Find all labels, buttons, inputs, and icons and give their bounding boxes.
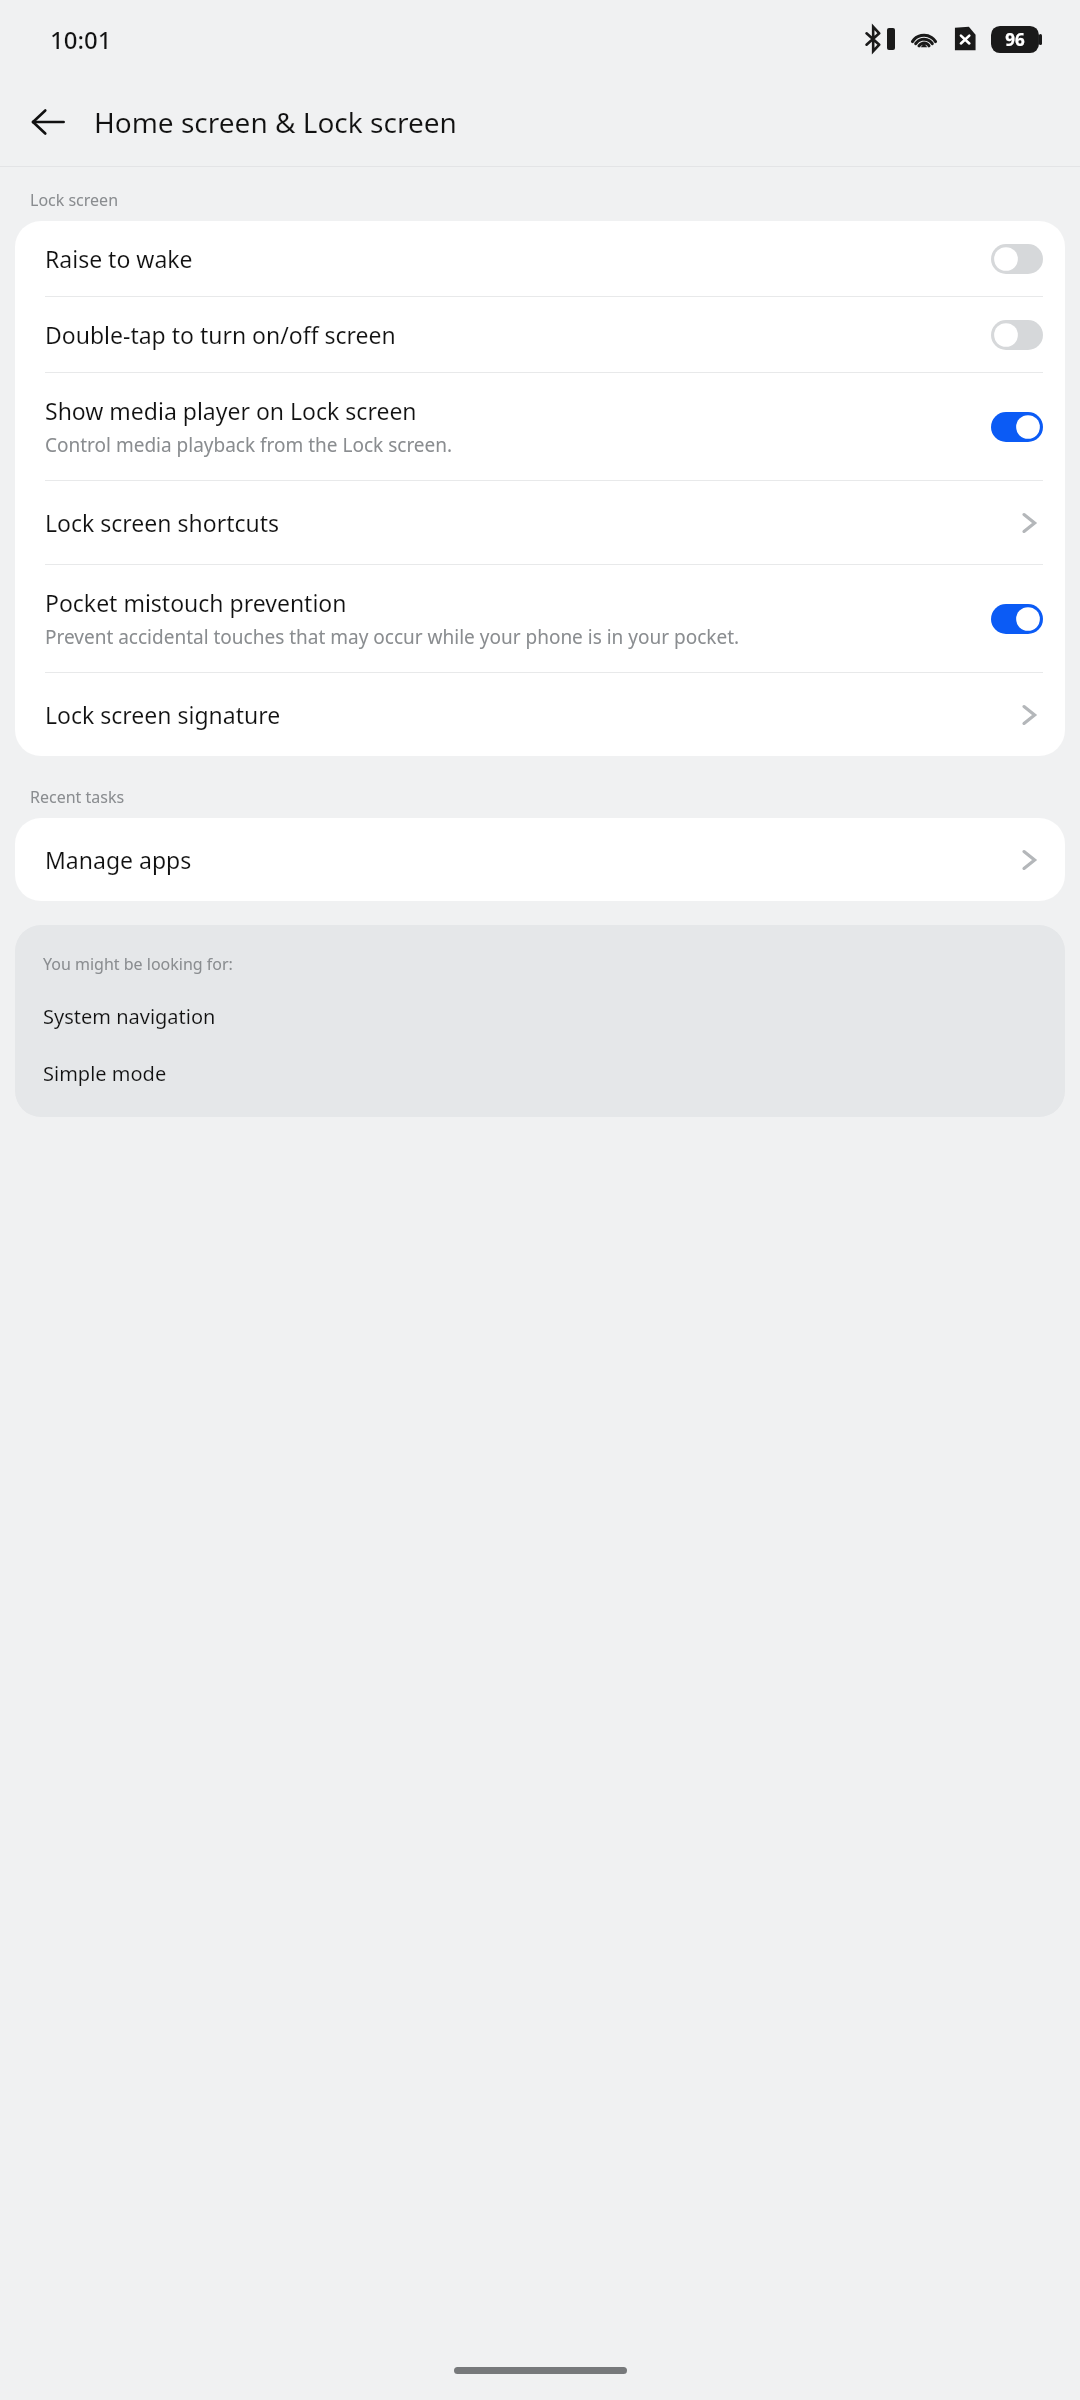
staticText: System navigation	[43, 1003, 216, 1030]
staticText: You might be looking for:	[43, 953, 233, 975]
staticText: 96	[1005, 28, 1025, 51]
button[interactable]: Show media player on Lock screen	[15, 373, 1065, 480]
button[interactable]: Double-tap to turn on/off screen	[15, 297, 1065, 372]
staticText: Show media player on Lock screen	[45, 395, 417, 426]
button[interactable]: Pocket mistouch prevention	[15, 565, 1065, 672]
staticText: Raise to wake	[45, 243, 193, 274]
button[interactable]: Lock screen shortcuts	[15, 481, 1065, 564]
staticText: Manage apps	[45, 844, 1019, 875]
staticText: Lock screen shortcuts	[45, 507, 1019, 538]
staticText: 10:01	[50, 23, 112, 56]
staticText: Lock screen	[30, 189, 119, 211]
staticText: Simple mode	[43, 1060, 167, 1087]
staticText: Recent tasks	[30, 786, 125, 808]
button[interactable]: Raise to wake	[15, 221, 1065, 296]
staticText: Control media playback from the Lock scr…	[45, 432, 453, 458]
staticText: Double-tap to turn on/off screen	[45, 319, 396, 350]
staticText: Lock screen signature	[45, 699, 1019, 730]
button[interactable]: System navigation	[43, 1003, 1037, 1030]
button[interactable]: Back	[22, 96, 74, 148]
staticText: Pocket mistouch prevention	[45, 587, 347, 618]
button[interactable]: Simple mode	[43, 1060, 1037, 1087]
staticText: Home screen & Lock screen	[94, 103, 457, 141]
staticText: Prevent accidental touches that may occu…	[45, 624, 740, 650]
button[interactable]: Lock screen signature	[15, 673, 1065, 756]
button[interactable]: Manage apps	[15, 818, 1065, 901]
